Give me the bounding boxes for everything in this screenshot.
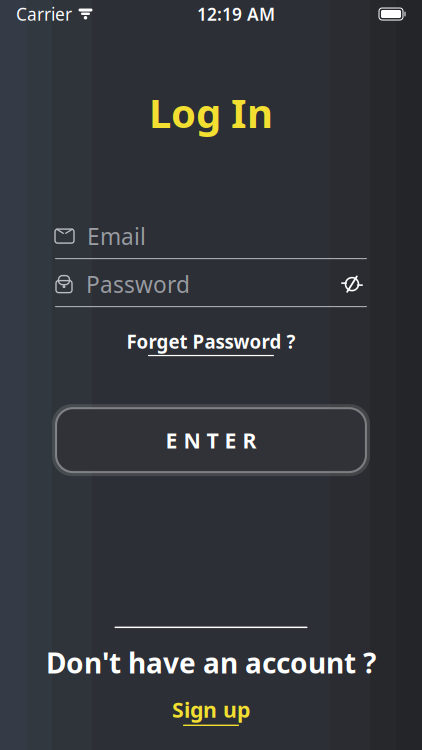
staticText: 12:19 AM [197, 2, 275, 25]
staticText: E N T E R [165, 426, 256, 454]
staticText: Email [87, 221, 146, 251]
button[interactable]: Forget Password ? [120, 327, 301, 358]
button[interactable]: Show password [337, 270, 367, 298]
button[interactable]: E N T E R [46, 400, 376, 480]
staticText: Carrier [16, 2, 72, 25]
staticText: Log In [149, 86, 273, 139]
staticText: Forget Password ? [126, 329, 295, 354]
staticText: Don't have an account ? [46, 644, 376, 681]
staticText: Password [86, 269, 190, 299]
button[interactable]: Sign up [164, 693, 258, 728]
staticText: Sign up [172, 695, 250, 724]
